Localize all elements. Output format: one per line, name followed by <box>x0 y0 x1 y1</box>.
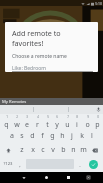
staticText: s <box>20 131 24 141</box>
staticText: n <box>71 145 76 155</box>
button[interactable]: x <box>27 143 38 157</box>
button[interactable]: 0 <box>92 115 102 129</box>
button[interactable]: 4 <box>32 115 42 129</box>
button[interactable]: Shift <box>1 143 16 157</box>
button[interactable]: l <box>87 129 97 143</box>
button[interactable]: Backspace <box>88 143 102 157</box>
button[interactable]: 8 <box>72 115 82 129</box>
staticText: d <box>30 131 35 141</box>
staticText: ?123 <box>3 161 13 167</box>
button[interactable]: Recent apps <box>57 172 79 183</box>
staticText: 1 <box>6 115 8 119</box>
staticText: 8 <box>76 115 78 119</box>
staticText: a <box>10 131 14 141</box>
staticText: f <box>41 131 44 141</box>
staticText: r <box>36 120 39 129</box>
staticText: Choose a remote name <box>12 53 93 60</box>
staticText: 0 <box>97 115 99 119</box>
button[interactable]: 7 <box>62 115 72 129</box>
button[interactable]: 3 <box>22 115 32 129</box>
staticText: k <box>80 131 84 141</box>
staticText: t <box>46 120 49 129</box>
staticText: v <box>51 145 55 155</box>
staticText: i <box>76 120 78 129</box>
button[interactable]: c <box>38 143 48 157</box>
button[interactable]: My Remotes <box>0 98 103 105</box>
staticText: 2 <box>16 115 18 119</box>
button[interactable]: Switch keyboard <box>79 172 97 183</box>
staticText: e <box>25 120 29 129</box>
staticText: l <box>91 131 93 141</box>
button[interactable]: b <box>58 143 68 157</box>
button[interactable]: v <box>48 143 58 157</box>
staticText: My Remotes <box>2 99 27 105</box>
button[interactable]: 5 <box>42 115 52 129</box>
button[interactable]: Done <box>89 160 98 169</box>
button[interactable]: ?123 <box>1 157 15 171</box>
staticText: Like: Bedroom <box>12 65 46 72</box>
staticText: Add remote to favorites! <box>12 28 93 48</box>
staticText: p <box>95 120 100 129</box>
button[interactable]: k <box>77 129 87 143</box>
button[interactable]: 6 <box>52 115 62 129</box>
button[interactable]: n <box>68 143 78 157</box>
button[interactable]: Like: Bedroom <box>12 65 93 72</box>
button[interactable]: Back <box>13 172 35 183</box>
button[interactable]: f <box>37 129 47 143</box>
button[interactable]: m <box>78 143 88 157</box>
staticText: j <box>71 131 73 141</box>
button[interactable]: 2 <box>12 115 22 129</box>
staticText: q <box>4 120 9 129</box>
staticText: b <box>61 145 66 155</box>
staticText: 7 <box>67 115 69 119</box>
staticText: 4 <box>37 115 39 119</box>
staticText: 6 <box>56 115 58 119</box>
staticText: c <box>41 145 45 155</box>
button[interactable]: Voice input <box>94 105 103 114</box>
staticText: u <box>65 120 70 129</box>
staticText: 5:18 <box>95 1 102 6</box>
staticText: x <box>31 145 35 155</box>
staticText: m <box>80 145 87 155</box>
button[interactable]: d <box>27 129 37 143</box>
staticText: 9 <box>87 115 89 119</box>
staticText: h <box>60 131 65 141</box>
button[interactable]: j <box>67 129 77 143</box>
button[interactable]: 1 <box>1 115 12 129</box>
staticText: , <box>19 161 21 168</box>
staticText: o <box>85 120 90 129</box>
staticText: 5 <box>47 115 49 119</box>
button[interactable] <box>69 105 103 114</box>
staticText: g <box>50 131 55 141</box>
button[interactable]: s <box>17 129 27 143</box>
staticText: w <box>14 120 20 129</box>
staticText: z <box>20 145 24 155</box>
button[interactable]: g <box>47 129 57 143</box>
button[interactable]: Home <box>35 172 57 183</box>
button[interactable]: 9 <box>82 115 92 129</box>
button[interactable]: z <box>16 143 27 157</box>
button[interactable]: , <box>15 157 25 171</box>
staticText: 3 <box>26 115 28 119</box>
button[interactable]: a <box>7 129 17 143</box>
staticText: y <box>55 120 59 129</box>
button[interactable]: . <box>75 157 85 171</box>
button[interactable]: h <box>57 129 67 143</box>
staticText: . <box>79 161 81 168</box>
